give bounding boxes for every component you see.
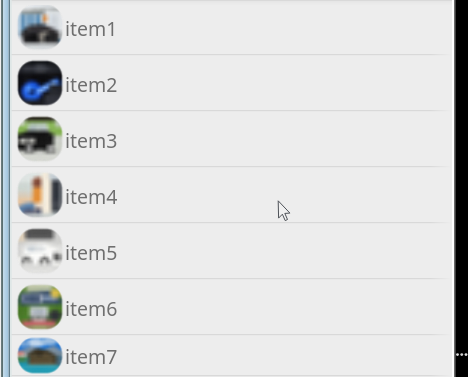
staticText: item3	[65, 127, 118, 154]
button[interactable]: More options	[454, 0, 468, 377]
staticText: item1	[65, 15, 118, 42]
staticText: item7	[65, 343, 118, 370]
staticText: item5	[65, 239, 118, 266]
button[interactable]: item6	[11, 280, 452, 336]
button[interactable]: item1	[11, 0, 452, 56]
button[interactable]: item2	[11, 56, 452, 112]
staticText: item4	[65, 183, 118, 210]
button[interactable]: item7	[11, 336, 452, 377]
staticText: item2	[65, 71, 118, 98]
staticText: item6	[65, 295, 118, 322]
button[interactable]: item5	[11, 224, 452, 280]
button[interactable]: item4	[11, 168, 452, 224]
button[interactable]: item3	[11, 112, 452, 168]
